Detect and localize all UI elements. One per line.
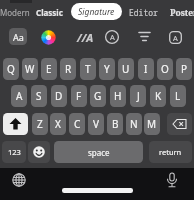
button[interactable] [12, 173, 26, 187]
button[interactable]: Q [3, 58, 19, 80]
button[interactable]: Signature [71, 3, 122, 20]
button[interactable]: H [110, 85, 126, 107]
button[interactable]: Z [32, 113, 48, 135]
button[interactable]: I [138, 58, 154, 80]
staticText: V [93, 117, 99, 131]
button[interactable]: U [118, 58, 134, 80]
staticText: A [173, 33, 178, 43]
staticText: D [55, 89, 63, 103]
staticText: T [85, 62, 91, 76]
staticText: F [76, 89, 82, 103]
button[interactable]: W [22, 58, 38, 80]
staticText: A [110, 32, 115, 42]
button[interactable]: Y [99, 58, 115, 80]
button[interactable]: R [60, 58, 76, 80]
staticText: X [55, 117, 61, 131]
staticText: N [130, 117, 138, 131]
button[interactable]: S [31, 85, 47, 107]
staticText: Signature [78, 6, 115, 18]
staticText: G [94, 89, 102, 103]
staticText: C [74, 117, 81, 131]
button[interactable]: A [169, 31, 182, 44]
staticText: Y [104, 62, 110, 76]
button[interactable]: C [69, 113, 85, 135]
staticText: Z [37, 117, 43, 131]
staticText: U [122, 62, 130, 76]
button[interactable]: V [88, 113, 104, 135]
button[interactable]: Aa [9, 28, 27, 45]
button[interactable]: D [51, 85, 67, 107]
button[interactable] [138, 31, 151, 42]
button[interactable]: A [11, 85, 27, 107]
staticText: P [181, 62, 188, 76]
button[interactable]: return [149, 141, 192, 163]
staticText: I [144, 62, 148, 76]
button[interactable]: Editor [129, 7, 158, 18]
button[interactable]: T [80, 58, 96, 80]
staticText: B [112, 117, 119, 131]
button[interactable]: X [50, 113, 66, 135]
button[interactable] [28, 141, 50, 163]
button[interactable]: space [54, 141, 143, 163]
staticText: H [114, 89, 122, 103]
staticText: K [155, 89, 162, 103]
button[interactable]: N [126, 113, 142, 135]
button[interactable]: Classic [36, 7, 63, 18]
staticText: M [147, 117, 157, 131]
staticText: A [16, 89, 23, 103]
button[interactable]: A [105, 30, 119, 44]
button[interactable]: Poster [170, 7, 194, 19]
staticText: L [175, 89, 181, 103]
staticText: Q [7, 62, 15, 76]
button[interactable]: 123 [2, 141, 26, 163]
button[interactable]: E [41, 58, 57, 80]
staticText: 123 [8, 147, 21, 157]
button[interactable]: J [130, 85, 146, 107]
button[interactable]: //A [77, 30, 94, 45]
staticText: E [46, 62, 52, 76]
button[interactable] [3, 113, 28, 135]
button[interactable]: M [144, 113, 160, 135]
button[interactable]: O [157, 58, 173, 80]
staticText: return [159, 147, 182, 157]
button[interactable] [41, 30, 56, 45]
staticText: space [88, 147, 110, 158]
button[interactable]: P [176, 58, 192, 80]
staticText: J [137, 89, 140, 103]
button[interactable]: G [90, 85, 106, 107]
staticText: Aa [13, 31, 24, 43]
staticText: S [36, 89, 42, 103]
button[interactable]: Modern [0, 7, 30, 18]
button[interactable] [167, 113, 192, 135]
staticText: O [161, 62, 169, 76]
button[interactable]: K [150, 85, 166, 107]
button[interactable]: F [71, 85, 87, 107]
staticText: W [25, 62, 35, 76]
button[interactable]: B [107, 113, 123, 135]
staticText: R [65, 62, 72, 76]
button[interactable] [165, 172, 179, 189]
button[interactable]: L [170, 85, 186, 107]
